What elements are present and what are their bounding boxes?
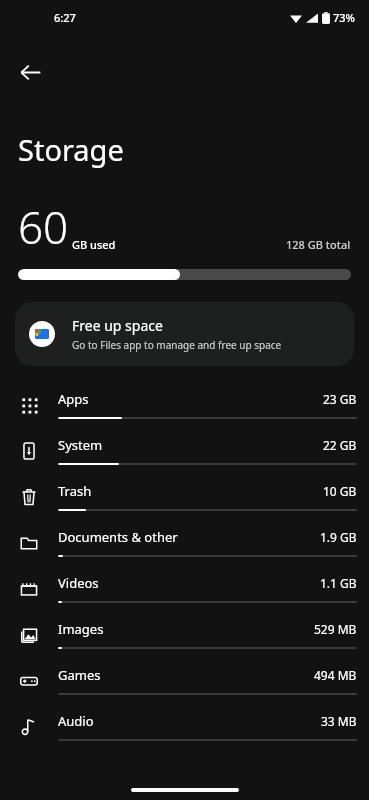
button[interactable]: Trash (0, 472, 369, 518)
staticText: 6:27 (54, 10, 76, 25)
button[interactable]: Images (0, 610, 369, 656)
staticText: 529 MB (314, 621, 357, 637)
staticText: Trash (58, 482, 323, 500)
staticText: 23 GB (323, 391, 357, 407)
staticText: 22 GB (323, 437, 357, 453)
staticText: Apps (58, 390, 323, 408)
staticText: Games (58, 666, 314, 684)
staticText: GB used (72, 237, 116, 252)
button[interactable]: Games (0, 656, 369, 702)
staticText: 10 GB (323, 483, 357, 499)
staticText: Documents & other (58, 528, 320, 546)
staticText: 60 (18, 197, 69, 257)
staticText: 128 GB total (286, 237, 351, 252)
staticText: 1.9 GB (320, 529, 357, 545)
staticText: System (58, 436, 323, 454)
staticText: 33 MB (321, 713, 357, 729)
button[interactable]: Documents & other (0, 518, 369, 564)
staticText: 73% (333, 10, 355, 25)
button[interactable]: Videos (0, 564, 369, 610)
button[interactable]: Apps (0, 380, 369, 426)
staticText: Storage (18, 130, 124, 169)
staticText: 494 MB (314, 667, 357, 683)
button[interactable]: Back (8, 50, 52, 94)
staticText: Go to Files app to manage and free up sp… (72, 338, 282, 352)
staticText: Audio (58, 712, 321, 730)
button[interactable]: System (0, 426, 369, 472)
button[interactable]: Free up space (15, 302, 354, 366)
staticText: Free up space (72, 316, 163, 335)
staticText: 1.1 GB (320, 575, 357, 591)
staticText: Images (58, 620, 314, 638)
button[interactable]: Audio (0, 702, 369, 748)
staticText: Videos (58, 574, 320, 592)
